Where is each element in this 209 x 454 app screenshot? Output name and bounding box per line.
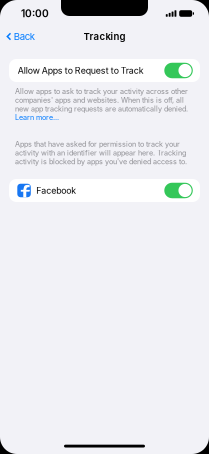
staticText: Learn more...: [15, 113, 59, 122]
staticText: Back: [14, 31, 35, 42]
staticText: Facebook: [36, 185, 76, 196]
staticText: Tracking: [83, 31, 125, 42]
button[interactable]: Facebook: [9, 179, 200, 202]
button[interactable]: Back: [0, 27, 35, 46]
staticText: 10:00: [21, 7, 49, 20]
button[interactable]: Learn more...: [15, 113, 59, 122]
staticText: Apps that have asked for permission to t…: [15, 140, 187, 166]
staticText: Allow Apps to Request to Track: [18, 65, 144, 76]
staticText: Allow apps to ask to track your activity…: [15, 87, 188, 113]
button[interactable]: Allow Apps to Request to Track: [9, 59, 200, 82]
